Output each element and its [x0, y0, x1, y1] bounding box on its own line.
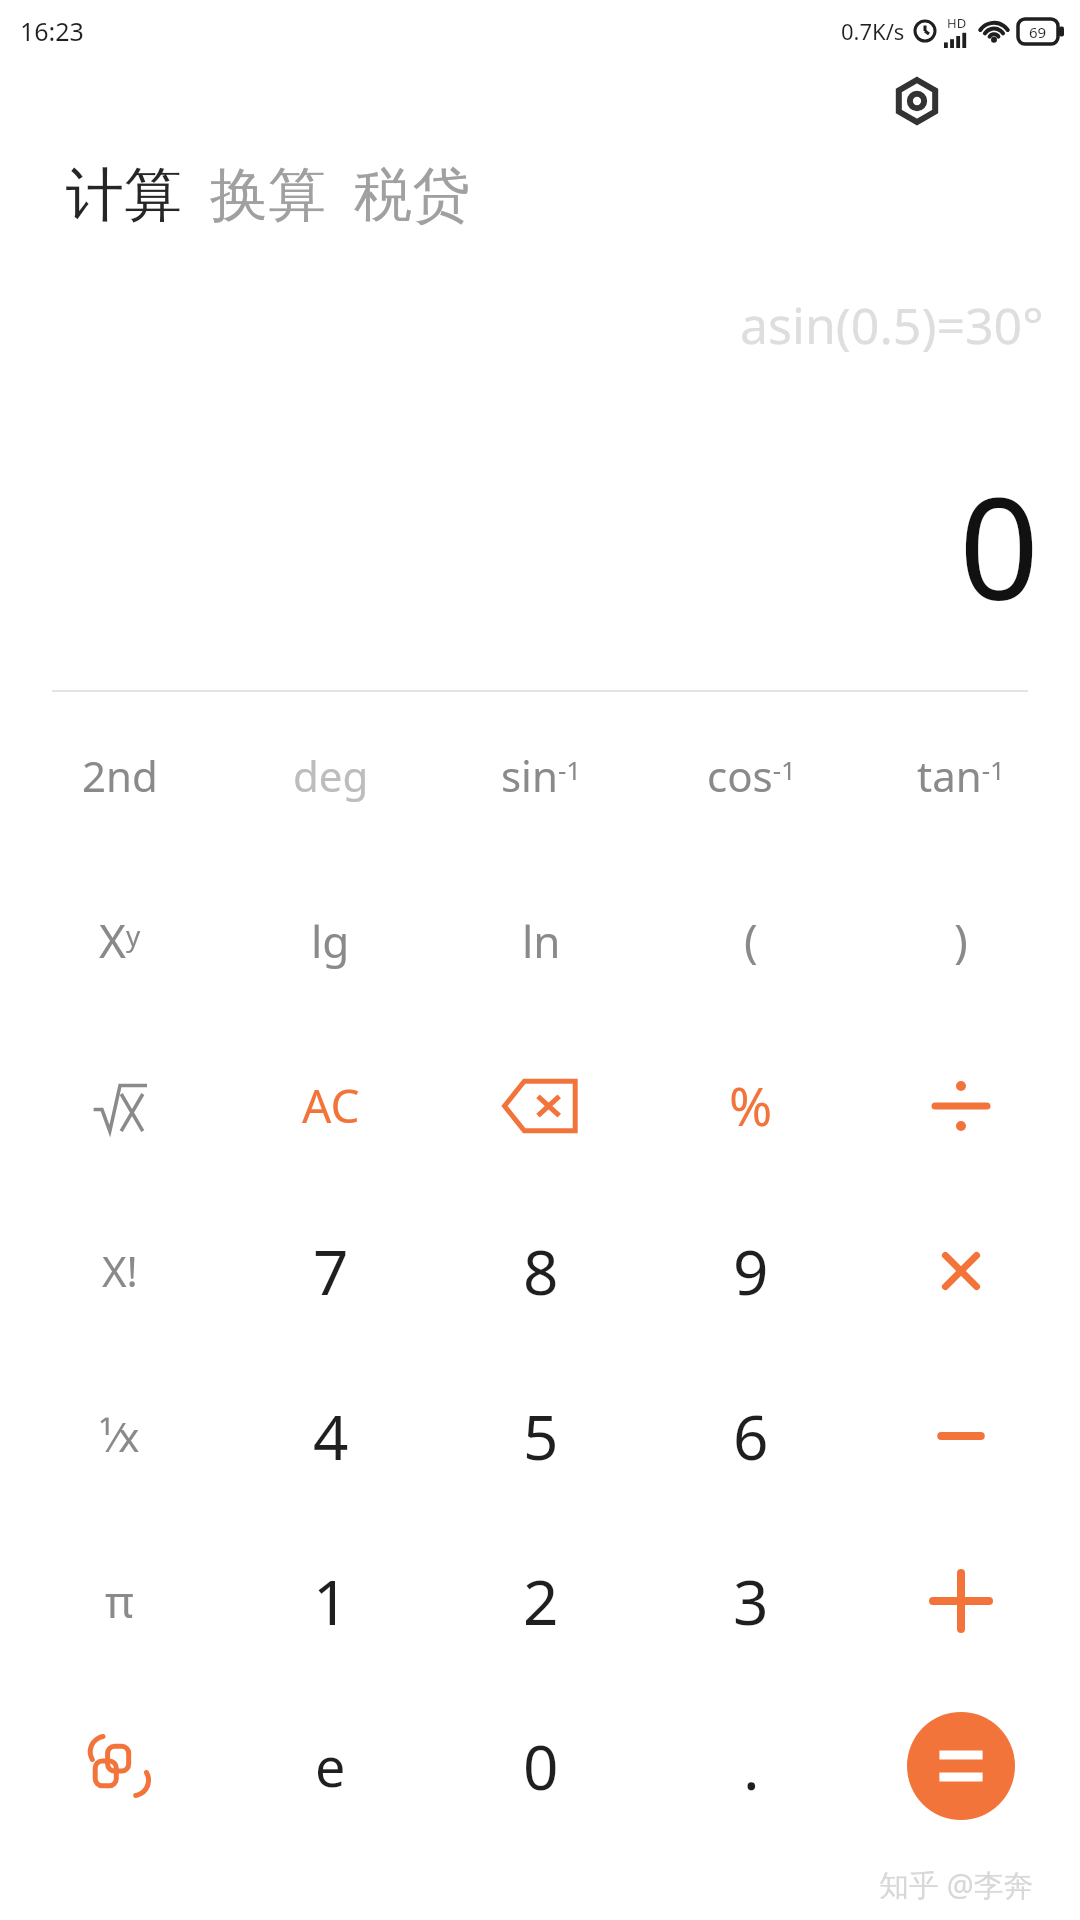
staticText: 9	[733, 1229, 769, 1313]
staticText: 16:23	[20, 14, 84, 48]
staticText: deg	[293, 747, 369, 804]
staticText: AC	[302, 1074, 360, 1137]
staticText: lg	[311, 911, 350, 971]
button[interactable]: 2	[436, 1518, 646, 1683]
staticText: sin-1	[501, 747, 582, 804]
button[interactable]: π	[14, 1518, 225, 1683]
button[interactable]: 4	[225, 1353, 436, 1518]
button[interactable]: 计算	[66, 159, 204, 232]
button[interactable]: tan-1	[856, 692, 1066, 858]
button[interactable]: 8	[436, 1188, 646, 1353]
button[interactable]: Divide	[856, 1023, 1066, 1188]
staticText: 6	[733, 1394, 769, 1478]
staticText: 0	[523, 1724, 559, 1808]
staticText: 7	[313, 1229, 349, 1313]
button[interactable]: 0	[436, 1683, 646, 1848]
button[interactable]: 3	[646, 1518, 856, 1683]
staticText: 2	[523, 1559, 559, 1643]
button[interactable]: 税贷	[332, 159, 470, 232]
staticText: 8	[523, 1229, 559, 1313]
button[interactable]: 1	[225, 1518, 436, 1683]
button[interactable]: 9	[646, 1188, 856, 1353]
staticText: 计算	[66, 159, 182, 232]
button[interactable]: X!	[14, 1188, 225, 1353]
button[interactable]: 7	[225, 1188, 436, 1353]
button[interactable]: ln	[436, 858, 646, 1023]
button[interactable]: .	[646, 1683, 856, 1848]
staticText: X!	[102, 1242, 138, 1299]
button[interactable]: 6	[646, 1353, 856, 1518]
button[interactable]: Plus	[856, 1518, 1066, 1683]
button[interactable]: Square root	[14, 1023, 225, 1188]
button[interactable]: Settings	[879, 63, 955, 139]
button[interactable]: ¹⁄x	[14, 1353, 225, 1518]
staticText: 2nd	[82, 747, 158, 804]
button[interactable]: %	[646, 1023, 856, 1188]
button[interactable]: Equals	[907, 1712, 1015, 1820]
staticText: e	[315, 1729, 346, 1803]
button[interactable]: 5	[436, 1353, 646, 1518]
staticText: 69	[1029, 22, 1047, 42]
staticText: 1	[313, 1559, 349, 1643]
button[interactable]: 换算	[204, 159, 332, 232]
button[interactable]: (	[646, 858, 856, 1023]
staticText: 5	[523, 1394, 559, 1478]
staticText: 3	[733, 1559, 769, 1643]
staticText: tan-1	[917, 747, 1005, 804]
staticText: 换算	[210, 159, 326, 232]
staticText: ln	[522, 911, 561, 971]
staticText: 0.7K/s	[841, 16, 905, 46]
staticText: π	[105, 1571, 134, 1631]
button[interactable]: AC	[225, 1023, 436, 1188]
staticText: )	[954, 909, 968, 972]
staticText: (	[744, 909, 758, 972]
staticText: 4	[313, 1394, 349, 1478]
button[interactable]: e	[225, 1683, 436, 1848]
button[interactable]: deg	[225, 692, 436, 858]
button[interactable]: sin-1	[436, 692, 646, 858]
staticText: 0	[959, 450, 1040, 641]
staticText: cos-1	[707, 747, 796, 804]
staticText: HD	[947, 14, 967, 32]
button[interactable]: Multiply	[856, 1188, 1066, 1353]
staticText: ¹⁄x	[99, 1409, 140, 1463]
staticText: 知乎 @李奔	[879, 1864, 1034, 1905]
button[interactable]: 2nd	[14, 692, 225, 858]
button[interactable]: )	[856, 858, 1066, 1023]
button[interactable]: lg	[225, 858, 436, 1023]
staticText: .	[743, 1724, 760, 1808]
button[interactable]: Minus	[856, 1353, 1066, 1518]
button[interactable]: cos-1	[646, 692, 856, 858]
button[interactable]: Convert	[14, 1683, 225, 1848]
staticText: asin(0.5)=30°	[740, 291, 1044, 359]
staticText: Xy	[99, 909, 141, 972]
button[interactable]: Xy	[14, 858, 225, 1023]
button[interactable]: Backspace	[436, 1023, 646, 1188]
staticText: 税贷	[354, 159, 470, 232]
staticText: %	[729, 1070, 773, 1141]
